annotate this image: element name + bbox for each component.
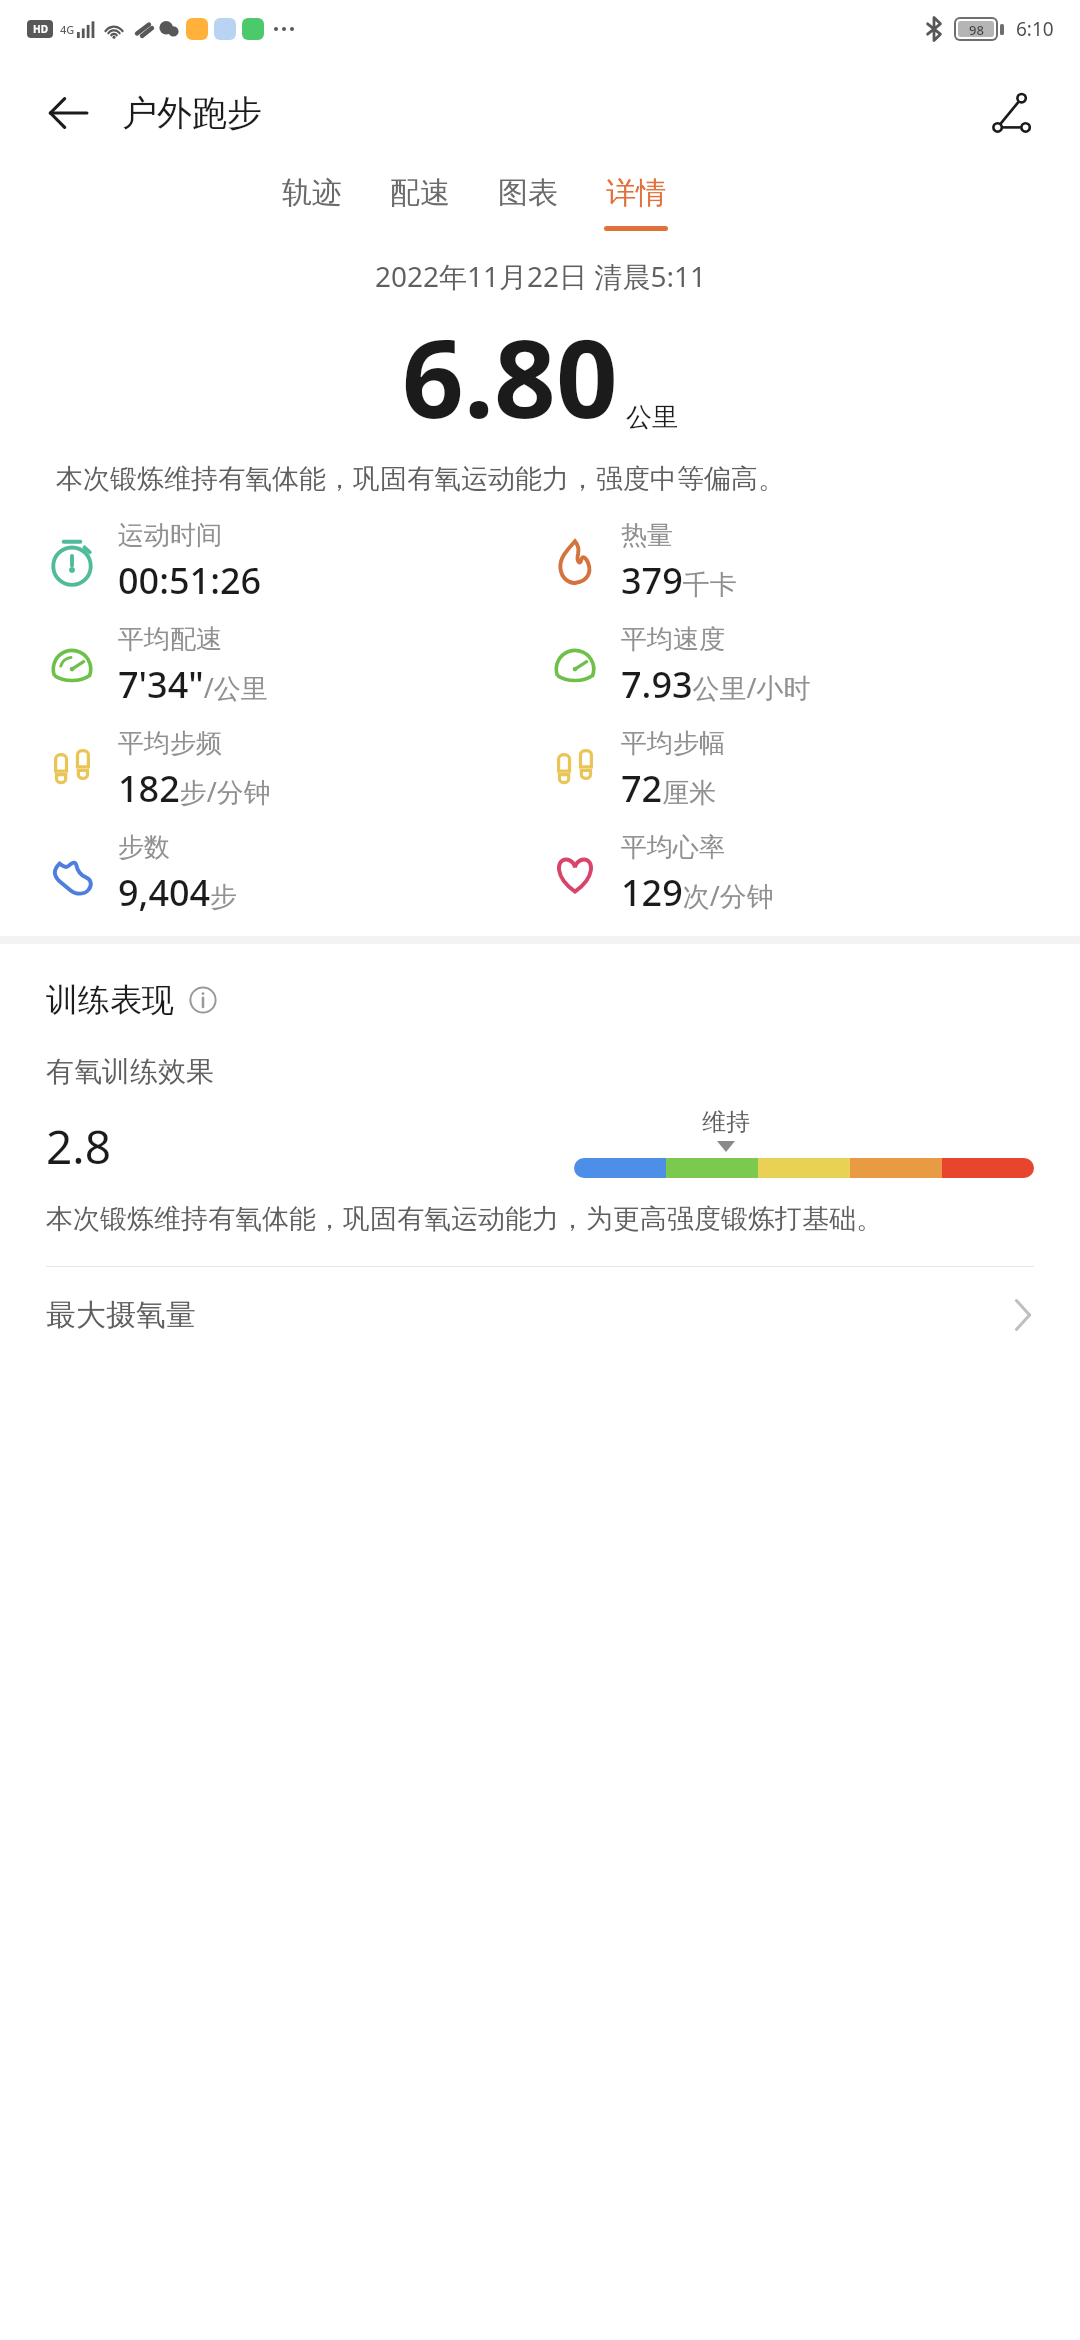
staticText: 图表 [498,174,558,212]
staticText: 平均速度 [621,623,725,656]
staticText: 4G [60,22,75,37]
staticText: 训练表现 [46,980,174,1020]
button[interactable]: 返回 [40,85,96,141]
staticText: 7'34"/公里 [118,660,268,709]
staticText: 户外跑步 [122,91,262,135]
staticText: 本次锻炼维持有氧体能，巩固有氧运动能力，为更高强度锻炼打基础。 [46,1202,883,1236]
staticText: 6.80 [402,303,618,450]
staticText: 129次/分钟 [621,868,774,917]
staticText: 2022年11月22日 清晨5:11 [375,257,706,295]
staticText: 平均步幅 [621,727,725,760]
button[interactable]: 图表 [474,168,582,237]
staticText: 379千卡 [621,556,737,605]
staticText: 6:10 [1016,16,1054,42]
staticText: 公里 [626,401,678,434]
staticText: 平均配速 [118,623,222,656]
button[interactable]: 平均步频 [44,718,547,822]
staticText: 平均心率 [621,831,725,864]
staticText: 7.93公里/小时 [621,660,811,709]
button[interactable]: 平均步幅 [547,718,1050,822]
button[interactable]: 平均配速 [44,614,547,718]
button[interactable]: 配速 [366,168,474,237]
staticText: 72厘米 [621,764,717,813]
staticText: 详情 [606,174,666,212]
button[interactable]: 轨迹 [258,168,366,237]
staticText: 9,404步 [118,868,238,917]
staticText: 00:51:26 [118,556,262,605]
staticText: 轨迹 [282,174,342,212]
staticText: 最大摄氧量 [46,1296,196,1334]
staticText: 配速 [390,174,450,212]
staticText: 有氧训练效果 [46,1054,214,1089]
staticText: 本次锻炼维持有氧体能，巩固有氧运动能力，强度中等偏高。 [56,462,1024,496]
button[interactable]: 平均心率 [547,822,1050,926]
button[interactable]: 说明 [186,983,220,1017]
staticText: 热量 [621,519,673,552]
button[interactable]: 最大摄氧量 [46,1267,1034,1363]
button[interactable]: 分享 [982,83,1042,143]
staticText: 182步/分钟 [118,764,271,813]
staticText: 2.8 [46,1115,111,1178]
button[interactable]: 详情 [582,168,690,237]
button[interactable]: 热量 [547,510,1050,614]
staticText: 步数 [118,831,170,864]
staticText: 平均步频 [118,727,222,760]
button[interactable]: 步数 [44,822,547,926]
button[interactable]: 平均速度 [547,614,1050,718]
staticText: HD [33,22,48,36]
staticText: 运动时间 [118,519,222,552]
staticText: 98 [969,21,984,37]
staticText: 维持 [702,1107,750,1137]
button[interactable]: 运动时间 [44,510,547,614]
